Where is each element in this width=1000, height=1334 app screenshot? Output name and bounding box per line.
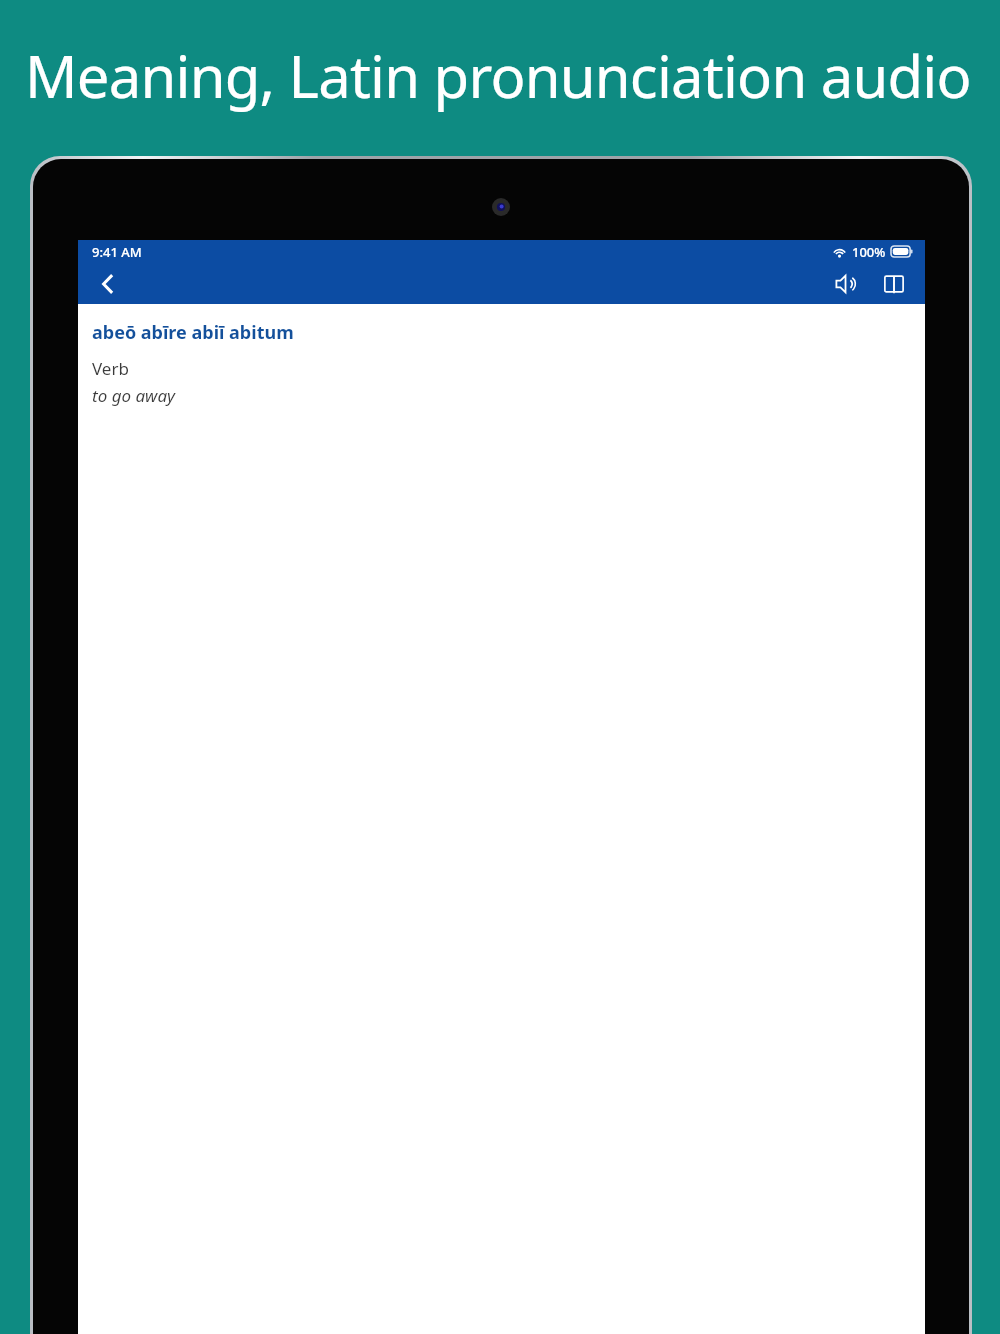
staticText: 100% bbox=[852, 243, 886, 261]
staticText: to go away bbox=[92, 384, 176, 407]
button[interactable]: Back bbox=[88, 264, 128, 304]
button[interactable]: Dictionary bbox=[873, 263, 915, 304]
staticText: Verb bbox=[92, 357, 129, 380]
staticText: Meaning, Latin pronunciation audio bbox=[25, 36, 1000, 115]
staticText: 9:41 AM bbox=[92, 243, 142, 261]
staticText: abeō abīre abiī abitum bbox=[92, 320, 294, 345]
button[interactable]: Play pronunciation audio bbox=[825, 263, 867, 304]
